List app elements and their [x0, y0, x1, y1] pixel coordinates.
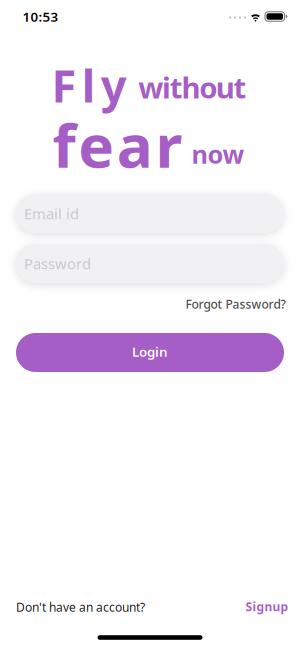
button[interactable]: Forgot Password? [185, 296, 285, 312]
button[interactable]: Password [16, 244, 284, 283]
staticText: Signup [245, 598, 288, 614]
button[interactable]: Login [16, 333, 284, 372]
staticText: y [101, 55, 127, 115]
staticText: Forgot Password? [185, 296, 285, 312]
staticText: F [51, 55, 76, 115]
staticText: r [156, 105, 183, 184]
staticText: Email id [24, 204, 79, 223]
staticText: Login [132, 343, 168, 360]
staticText: f [52, 105, 75, 184]
staticText: a [117, 105, 153, 184]
staticText: without [138, 68, 246, 107]
staticText: e [78, 105, 114, 184]
staticText: l [82, 55, 96, 115]
button[interactable]: Email id [16, 194, 284, 233]
staticText: Don't have an account? [16, 599, 145, 615]
button[interactable]: Signup [245, 598, 288, 614]
staticText: Password [24, 254, 91, 273]
staticText: now [192, 137, 245, 171]
staticText: 10:53 [22, 8, 58, 25]
